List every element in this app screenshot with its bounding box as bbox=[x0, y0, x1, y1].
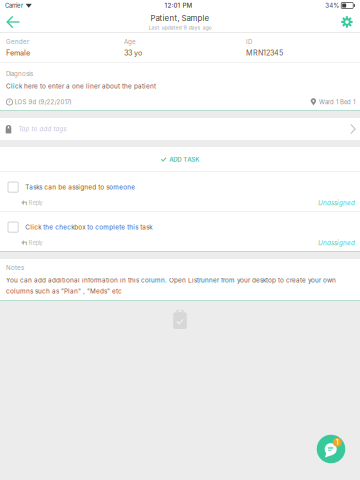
staticText: Click the checkbox to complete this task bbox=[25, 223, 152, 231]
button[interactable]: ADD TASK bbox=[0, 147, 360, 172]
staticText: Click here to enter a one liner about th… bbox=[6, 82, 156, 90]
button[interactable]: Settings bbox=[333, 13, 360, 31]
button[interactable]: Back bbox=[0, 12, 28, 32]
button[interactable]: Click the checkbox to complete this task bbox=[0, 212, 360, 252]
staticText: Tasks can be assigned to someone bbox=[25, 183, 135, 191]
button[interactable]: Messages bbox=[316, 434, 346, 464]
staticText: 12:01 PM bbox=[165, 2, 193, 9]
staticText: ADD TASK bbox=[169, 156, 199, 163]
staticText: Reply bbox=[28, 200, 42, 206]
staticText: Unassigned bbox=[318, 199, 355, 207]
staticText: 1 bbox=[336, 438, 339, 446]
staticText: 33 yo bbox=[124, 48, 142, 57]
staticText: Tap to add tags bbox=[18, 125, 66, 133]
staticText: Notes bbox=[6, 264, 24, 271]
button[interactable]: Tap to add tags bbox=[0, 118, 360, 140]
staticText: ID bbox=[246, 38, 252, 45]
staticText: 34% bbox=[325, 2, 339, 9]
staticText: Reply bbox=[28, 240, 42, 246]
staticText: Patient, Sample bbox=[150, 13, 209, 23]
staticText: LOS 9d (9/22/2017) bbox=[14, 98, 71, 106]
staticText: Ward 1 Bed 1 bbox=[319, 98, 355, 106]
staticText: Unassigned bbox=[318, 239, 355, 247]
staticText: MRN12345 bbox=[246, 48, 283, 57]
staticText: You can add additional information in th… bbox=[6, 276, 336, 295]
staticText: Gender bbox=[6, 38, 29, 45]
button[interactable]: Tasks can be assigned to someone bbox=[0, 172, 360, 212]
staticText: Diagnosis bbox=[6, 70, 33, 77]
staticText: Female bbox=[6, 48, 30, 57]
staticText: Age bbox=[124, 38, 136, 45]
staticText: Carrier bbox=[5, 2, 23, 9]
staticText: Last updated 9 days ago bbox=[148, 24, 211, 31]
